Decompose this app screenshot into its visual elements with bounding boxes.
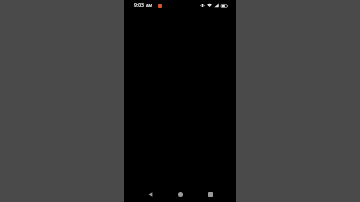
button[interactable]: Recent apps — [199, 186, 221, 202]
staticText: AM — [146, 3, 153, 8]
button[interactable]: Home — [169, 186, 191, 202]
staticText: 9:03 — [134, 2, 144, 9]
button[interactable]: Back — [139, 186, 161, 202]
